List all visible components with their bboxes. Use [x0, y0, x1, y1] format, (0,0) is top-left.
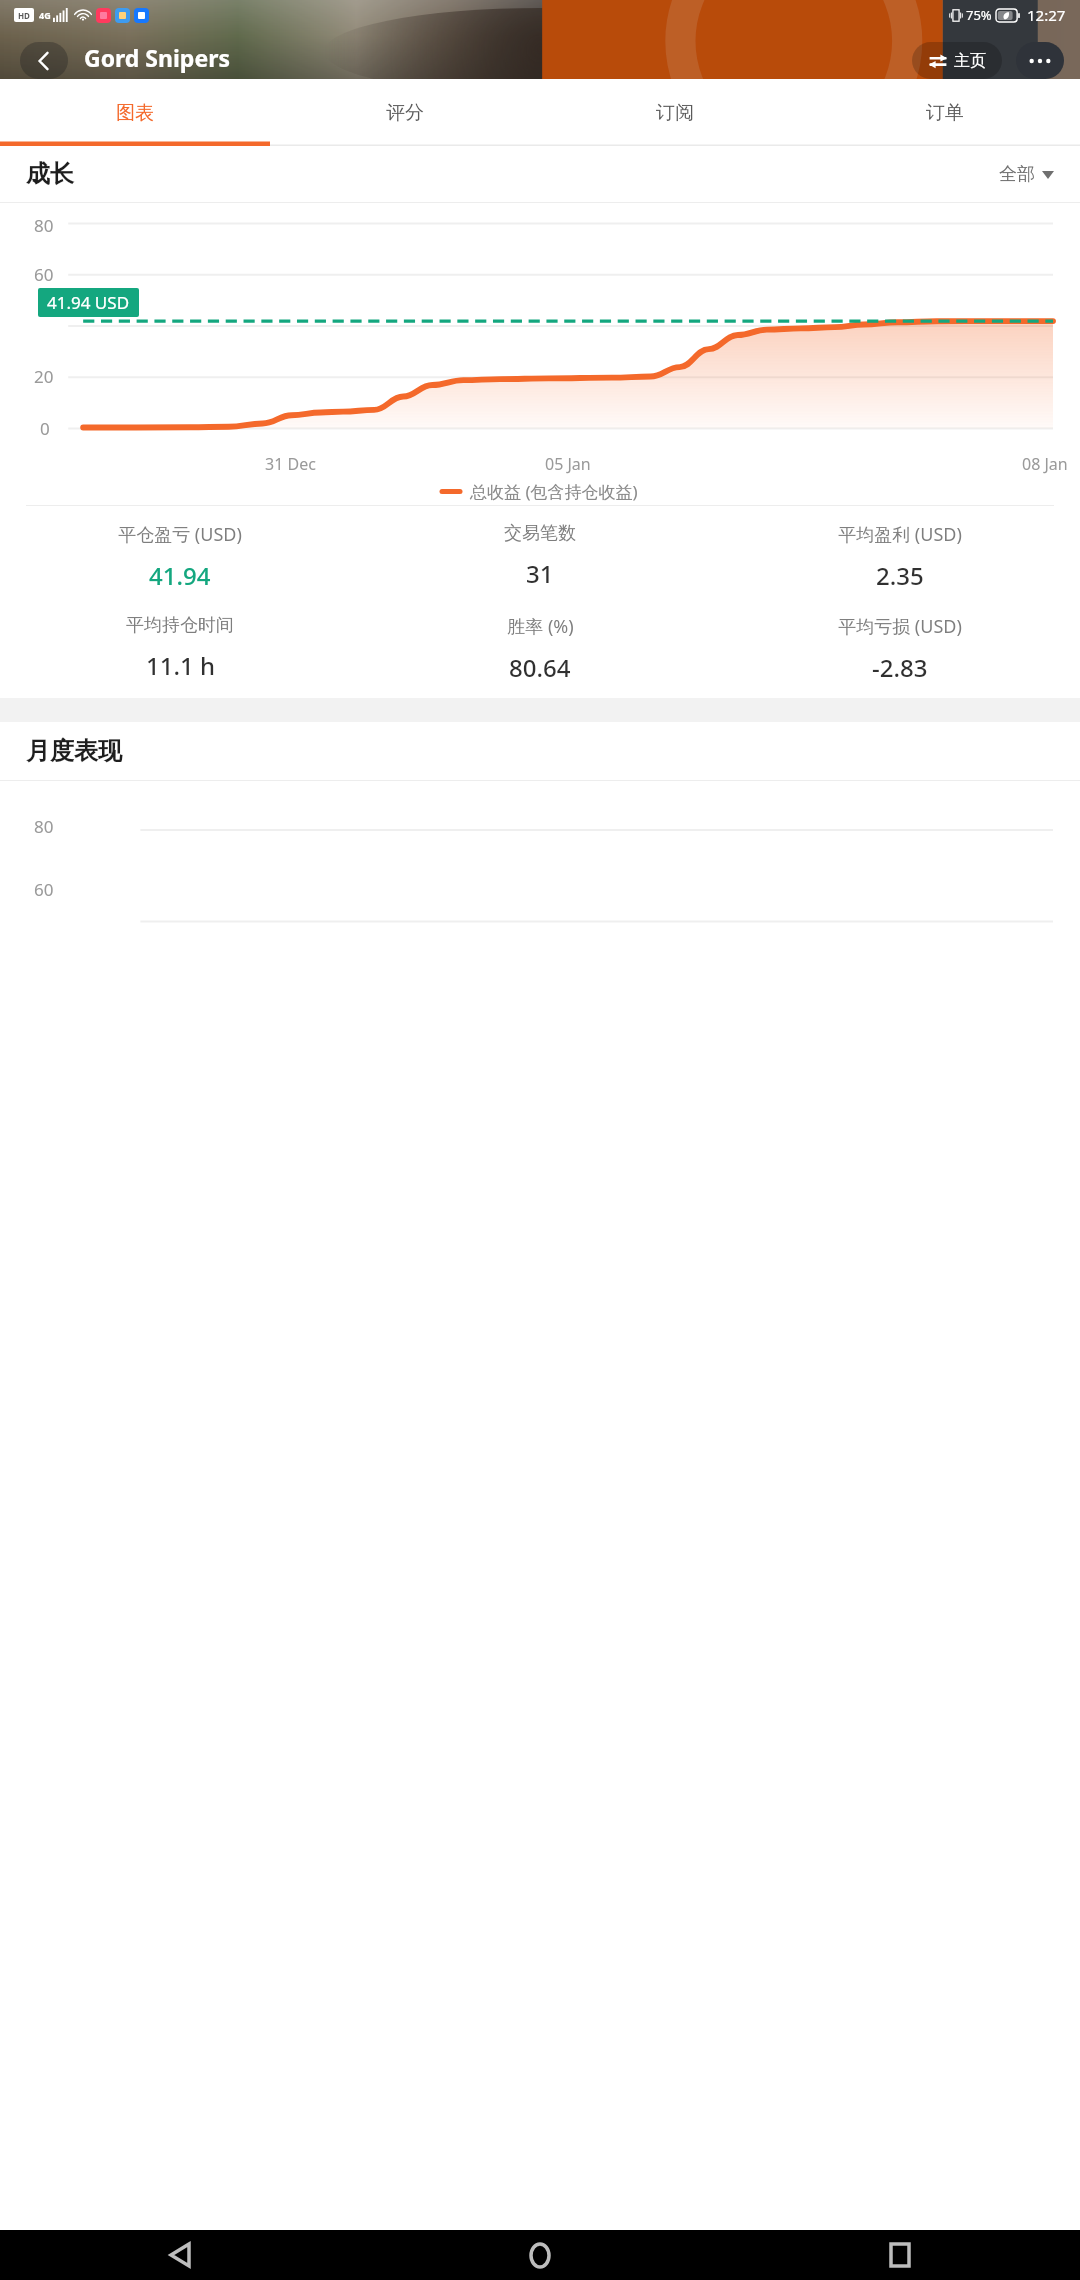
staticText: 20: [34, 365, 54, 388]
button[interactable]: Back: [0, 2230, 360, 2280]
button[interactable]: Recent apps: [720, 2230, 1080, 2280]
staticText: 4G: [39, 9, 51, 21]
staticText: HD: [18, 10, 30, 21]
staticText: 月度表现: [26, 736, 122, 766]
staticText: #4 | ForexTimeFXTM-ECN: [84, 76, 253, 79]
staticText: 41.94: [149, 559, 211, 592]
staticText: 订阅: [656, 101, 694, 125]
staticText: 评分: [386, 101, 424, 125]
staticText: 80: [34, 815, 54, 838]
staticText: 12:27: [1027, 5, 1066, 25]
staticText: 主页: [954, 51, 986, 71]
staticText: 平仓盈亏 (USD): [118, 522, 242, 547]
button[interactable]: Home: [360, 2230, 720, 2280]
button[interactable]: 订阅: [540, 79, 810, 146]
staticText: -2.83: [872, 651, 928, 684]
staticText: 60: [34, 878, 54, 901]
staticText: 80.64: [509, 651, 571, 684]
staticText: 平均亏损 (USD): [838, 614, 962, 639]
staticText: 75%: [966, 6, 992, 24]
staticText: 60: [34, 263, 54, 286]
button[interactable]: 订单: [810, 79, 1080, 146]
button[interactable]: 图表: [0, 79, 270, 146]
staticText: Gord Snipers: [84, 42, 230, 73]
staticText: 41.94 USD: [47, 291, 130, 314]
staticText: 11.1 h: [146, 649, 215, 682]
staticText: 80: [34, 214, 54, 235]
button[interactable]: More options: [1016, 42, 1064, 79]
staticText: 全部: [999, 163, 1035, 186]
staticText: 交易笔数: [504, 522, 576, 545]
staticText: 总收益 (包含持仓收益): [470, 480, 638, 503]
staticText: 0: [40, 417, 50, 440]
staticText: 08 Jan: [1022, 453, 1068, 475]
staticText: 31 Dec: [265, 453, 316, 475]
button[interactable]: 评分: [270, 79, 540, 146]
staticText: 31: [526, 557, 554, 590]
staticText: 平均盈利 (USD): [838, 522, 962, 547]
button[interactable]: 全部: [999, 163, 1054, 186]
button[interactable]: 主页: [912, 42, 1002, 79]
button[interactable]: Back: [20, 42, 68, 79]
staticText: 订单: [926, 101, 964, 125]
staticText: 成长: [26, 159, 74, 189]
staticText: 胜率 (%): [507, 614, 574, 639]
staticText: 图表: [116, 101, 154, 125]
staticText: 平均持仓时间: [126, 614, 234, 637]
staticText: 2.35: [876, 559, 924, 592]
staticText: 05 Jan: [545, 453, 591, 475]
